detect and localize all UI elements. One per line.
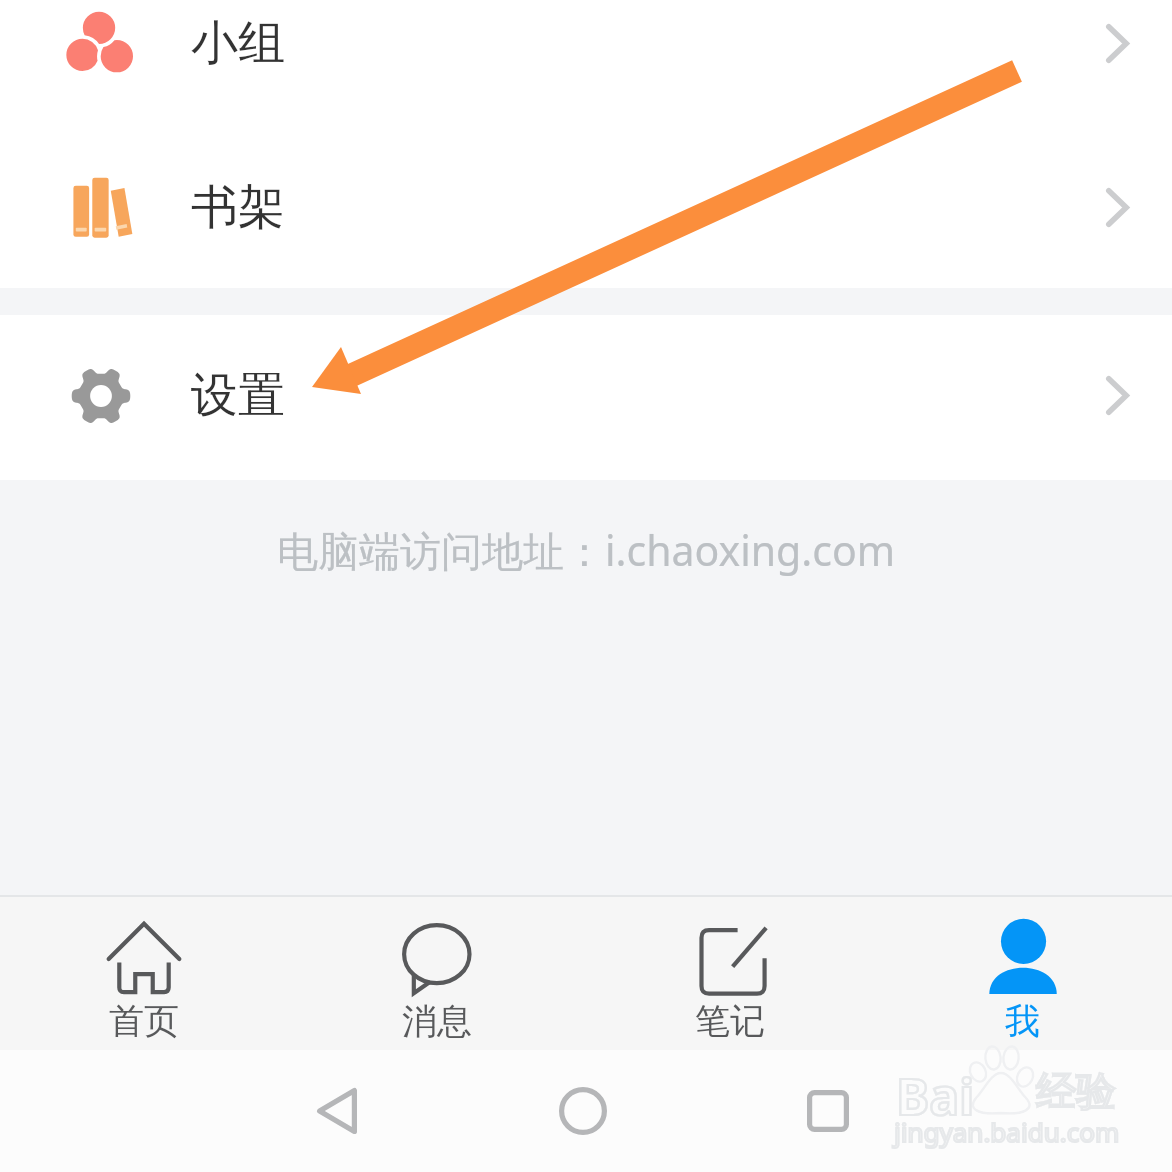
button[interactable]: Recent apps bbox=[783, 1050, 873, 1172]
staticText: 设置 bbox=[191, 366, 285, 425]
staticText: 电脑端访问地址：i.chaoxing.com bbox=[0, 522, 1172, 578]
staticText: 经验 bbox=[1036, 1066, 1116, 1116]
button[interactable]: 书架 bbox=[0, 125, 1172, 290]
staticText: 消息 bbox=[402, 999, 472, 1043]
button[interactable]: 消息 bbox=[293, 895, 586, 1050]
staticText: 首页 bbox=[109, 999, 179, 1043]
staticText: 我 bbox=[1005, 999, 1040, 1043]
staticText: 小组 bbox=[191, 14, 285, 73]
button[interactable]: 小组 bbox=[0, 0, 1172, 86]
button[interactable]: 我 bbox=[879, 895, 1172, 1050]
button[interactable]: 设置 bbox=[0, 313, 1172, 478]
staticText: 笔记 bbox=[695, 999, 765, 1043]
button[interactable]: Home bbox=[538, 1050, 628, 1172]
button[interactable]: 首页 bbox=[0, 895, 293, 1050]
staticText: 书架 bbox=[191, 178, 285, 237]
staticText: Bai bbox=[896, 1062, 975, 1130]
staticText: jingyan.baidu.com bbox=[894, 1114, 1120, 1149]
button[interactable]: 笔记 bbox=[586, 895, 879, 1050]
button[interactable]: Back bbox=[292, 1050, 382, 1172]
